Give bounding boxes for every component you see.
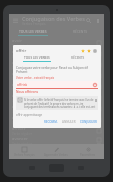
staticText: RÉCENTS — [71, 56, 85, 60]
staticText: offrir — [16, 48, 27, 54]
staticText: TOUS LES VERBES — [24, 56, 50, 60]
staticText: CONJUGUER — [80, 120, 97, 124]
button[interactable]: attendre — [12, 114, 101, 125]
button[interactable]: TOUS LES VERBES — [16, 55, 57, 63]
staticText: Verbe régulier — [12, 77, 33, 81]
button[interactable]: Search — [85, 17, 92, 24]
staticText: aimer — [12, 71, 24, 77]
staticText: ajouter — [12, 49, 27, 55]
staticText: TOUS LES VERBES — [19, 29, 47, 33]
button[interactable]: More options — [94, 17, 101, 24]
staticText: RÉCENTS — [73, 29, 88, 33]
staticText: attendre — [12, 115, 30, 121]
staticText: Si le verbe offrir (infinitif français) … — [24, 98, 96, 108]
staticText: Nous offrirons — [16, 90, 39, 94]
button[interactable]: acheter — [12, 81, 101, 92]
button[interactable]: avoir — [12, 37, 101, 48]
staticText: RECOMM. — [44, 120, 58, 124]
staticText: Conjugaison des Verbes — [22, 15, 85, 22]
button[interactable]: TOUS LES VERBES — [9, 27, 56, 37]
button[interactable]: Settings — [92, 48, 98, 54]
staticText: offrirà — [17, 82, 27, 87]
button[interactable]: Bookmark — [86, 48, 92, 54]
staticText: avancer — [12, 136, 28, 142]
button[interactable]: aimer — [12, 70, 101, 81]
button[interactable]: ANNULER — [61, 119, 77, 125]
button[interactable]: arriver — [12, 125, 101, 136]
staticText: Verbe régulier — [12, 99, 33, 103]
staticText: Paramètres — [80, 153, 96, 157]
staticText: apporter — [12, 104, 30, 110]
staticText: aller — [12, 60, 21, 66]
staticText: appeler — [12, 93, 28, 99]
button[interactable]: Menu — [12, 17, 19, 24]
staticText: Verbe régulier — [12, 110, 33, 114]
staticText: acheter — [12, 82, 28, 88]
button[interactable]: CONJUGUER — [79, 119, 98, 125]
staticText: Votre verbe - extrait français — [16, 76, 55, 80]
button[interactable]: apporter — [12, 103, 101, 114]
button[interactable]: appeler — [12, 92, 101, 103]
staticText: arriver — [12, 126, 26, 132]
staticText: avoir — [12, 38, 23, 44]
staticText: ANNULER — [62, 120, 76, 124]
staticText: Verbe régulier — [12, 88, 33, 92]
staticText: Verbe régulier — [12, 55, 33, 59]
button[interactable]: aller — [12, 59, 101, 70]
staticText: offrir apprentissage — [16, 113, 43, 117]
button[interactable]: offrirà — [16, 81, 98, 88]
button[interactable]: RÉCENTS — [57, 55, 98, 63]
staticText: Conjuguez votre verbe pour Passé ou Subj… — [16, 66, 98, 74]
button[interactable]: ajouter — [12, 48, 101, 59]
staticText: Verbe régulier — [12, 44, 33, 48]
button[interactable]: RÉCENTS — [56, 27, 104, 37]
staticText: Apprendre Verbes — [44, 153, 68, 157]
button[interactable]: RECOMM. — [43, 119, 59, 125]
staticText: Verbe régulier — [12, 121, 33, 125]
staticText: Verbe régulier — [12, 66, 33, 70]
button[interactable]: Favorite — [80, 48, 86, 54]
